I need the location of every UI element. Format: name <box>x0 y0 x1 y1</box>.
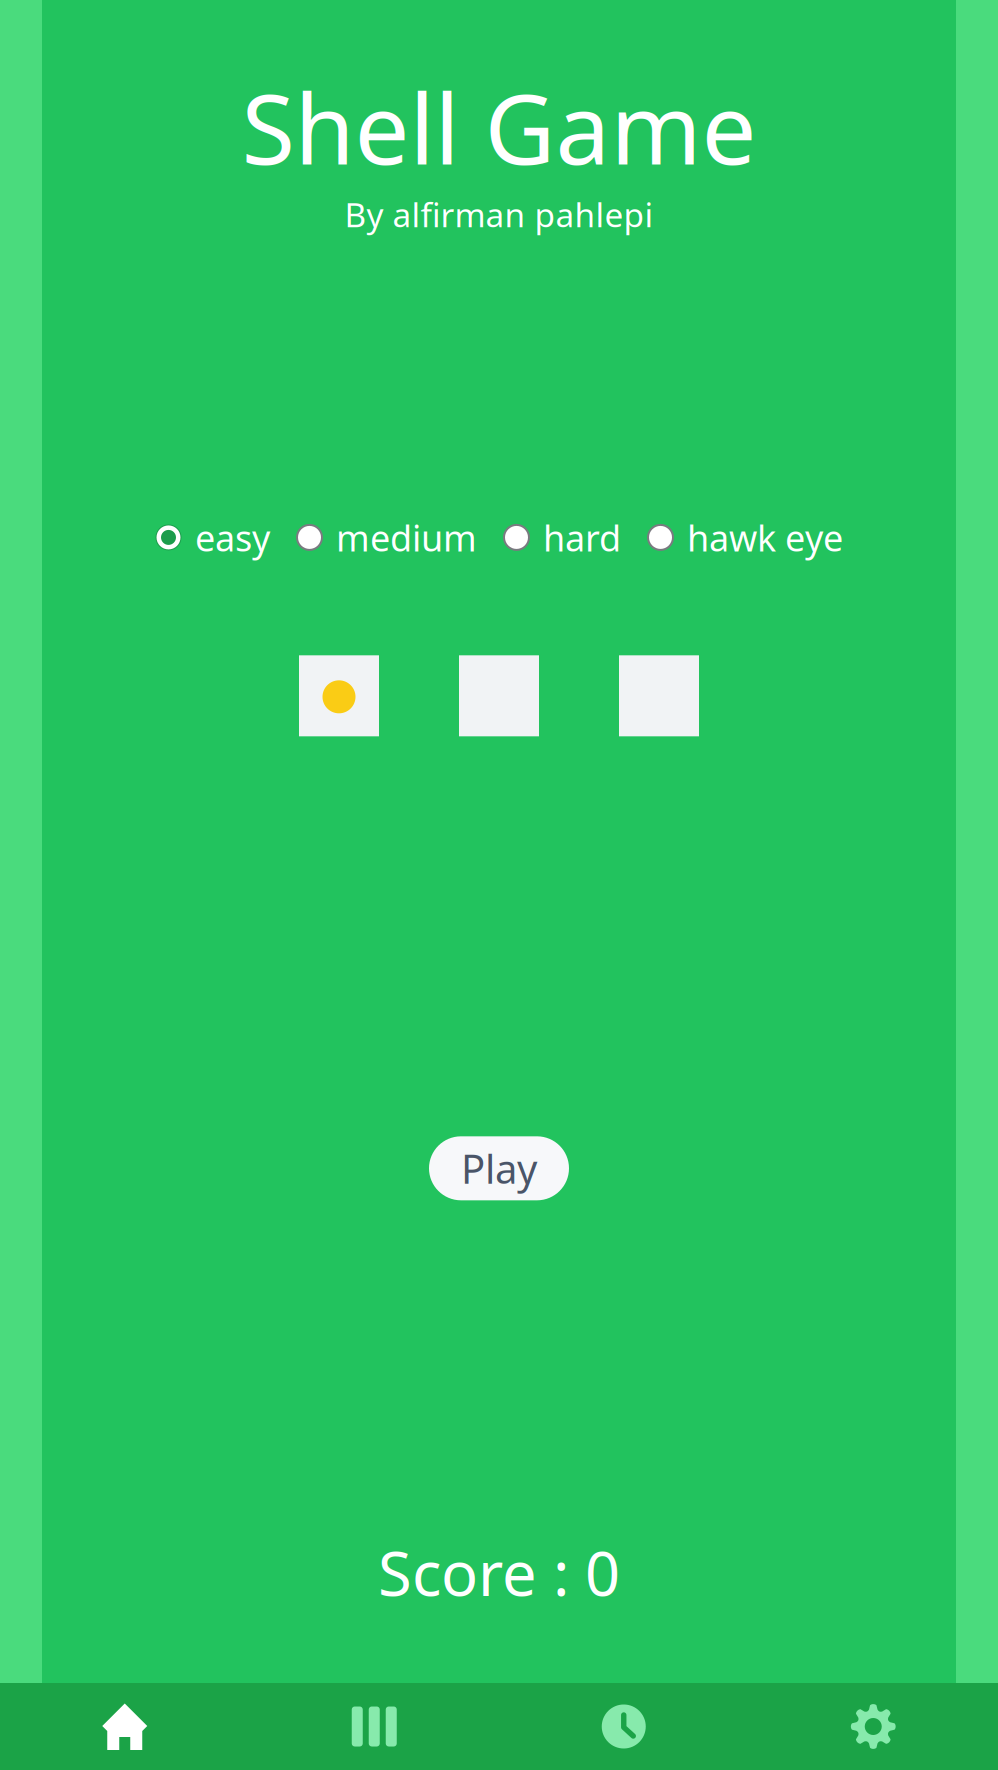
staticText: By alfirman pahlepi <box>344 192 653 237</box>
button[interactable]: Settings <box>748 1683 998 1770</box>
button[interactable]: hard <box>503 513 621 561</box>
button[interactable]: Cup 1 <box>299 655 379 736</box>
button[interactable]: Cup 2 <box>459 655 539 736</box>
button[interactable]: History <box>499 1683 748 1770</box>
button[interactable]: easy <box>155 513 270 561</box>
staticText: hard <box>543 513 621 561</box>
staticText: hawk eye <box>687 513 843 561</box>
button[interactable]: Play <box>429 1136 569 1200</box>
button[interactable]: hawk eye <box>647 513 843 561</box>
staticText: medium <box>336 513 477 561</box>
staticText: easy <box>195 513 270 561</box>
button[interactable]: medium <box>296 513 477 561</box>
button[interactable]: Cup 3 <box>619 655 699 736</box>
staticText: Play <box>461 1142 537 1195</box>
button[interactable]: Home <box>0 1683 249 1770</box>
button[interactable]: Levels <box>249 1683 499 1770</box>
staticText: Shell Game <box>241 62 756 191</box>
staticText: Score : 0 <box>378 1532 620 1613</box>
